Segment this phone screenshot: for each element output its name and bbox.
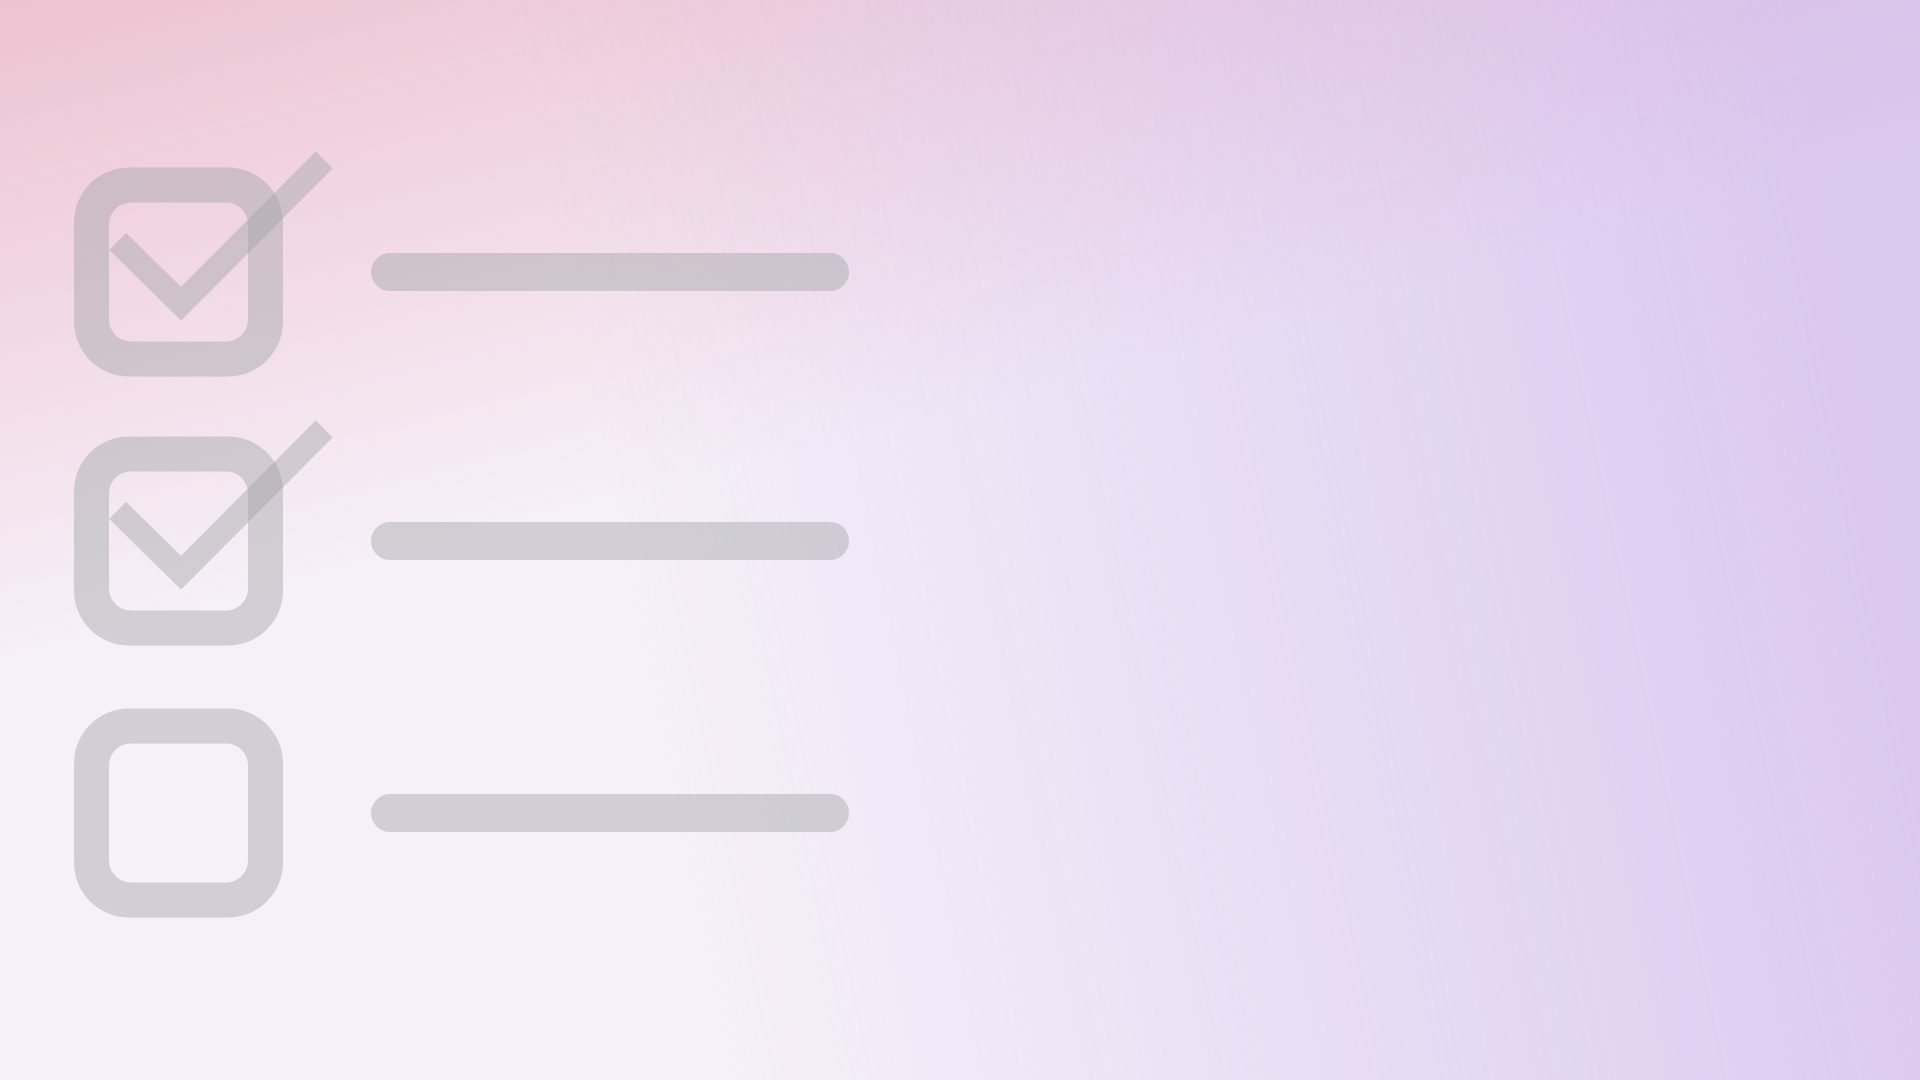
- button[interactable]: Completed task 1: [74, 142, 849, 402]
- button[interactable]: Task 3, not completed: [74, 683, 849, 943]
- button[interactable]: Completed task 2: [74, 411, 849, 671]
